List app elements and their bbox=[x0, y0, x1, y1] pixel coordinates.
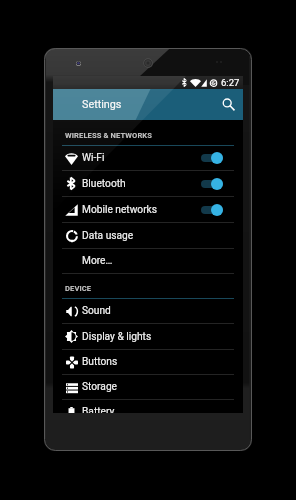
button[interactable]: Wi-Fi bbox=[53, 146, 243, 171]
staticText: Wi-Fi bbox=[82, 152, 105, 164]
button[interactable]: Toggle bbox=[201, 204, 223, 216]
staticText: DEVICE bbox=[65, 284, 92, 293]
staticText: WIRELESS & NETWORKS bbox=[65, 131, 153, 140]
button[interactable]: Toggle bbox=[201, 152, 223, 164]
staticText: Buttons bbox=[82, 356, 118, 368]
button[interactable]: Search bbox=[213, 89, 243, 120]
button[interactable]: Battery bbox=[53, 400, 243, 413]
staticText: Storage bbox=[82, 381, 118, 393]
staticText: 6:27 bbox=[221, 77, 240, 88]
button[interactable]: Mobile networks bbox=[53, 197, 243, 223]
staticText: Display & lights bbox=[82, 331, 152, 343]
button[interactable]: Toggle bbox=[201, 178, 223, 190]
button[interactable]: Display & lights bbox=[53, 324, 243, 350]
staticText: Battery bbox=[82, 406, 115, 413]
staticText: Settings bbox=[82, 98, 122, 111]
button[interactable]: More… bbox=[53, 249, 243, 274]
button[interactable]: Sound bbox=[53, 299, 243, 324]
button[interactable]: Data usage bbox=[53, 223, 243, 249]
staticText: Mobile networks bbox=[82, 204, 158, 216]
staticText: Data usage bbox=[82, 230, 134, 242]
button[interactable]: Storage bbox=[53, 375, 243, 400]
staticText: More… bbox=[82, 255, 113, 267]
button[interactable]: Bluetooth bbox=[53, 171, 243, 197]
staticText: Sound bbox=[82, 305, 111, 317]
button[interactable]: Buttons bbox=[53, 350, 243, 375]
staticText: Bluetooth bbox=[82, 178, 126, 190]
